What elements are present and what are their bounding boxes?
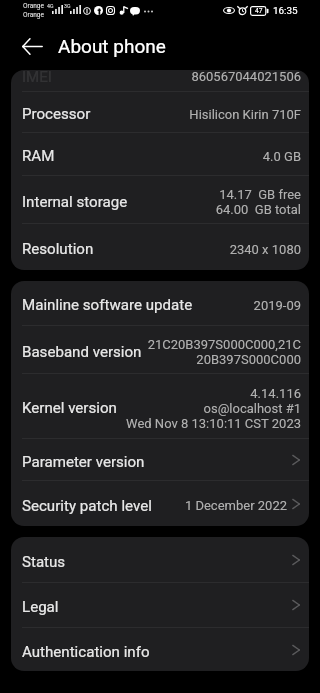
button[interactable]: Kernel version: [11, 374, 309, 438]
staticText: Baseband version: [22, 343, 142, 361]
staticText: 16:35: [273, 5, 298, 17]
button[interactable]: RAM: [11, 133, 309, 175]
button[interactable]: Baseband version: [11, 326, 309, 373]
staticText: 4G: [47, 3, 54, 9]
staticText: Wed Nov 8 13:10:11 CST 2023: [126, 416, 301, 431]
staticText: 47: [255, 7, 263, 15]
staticText: Status: [22, 553, 66, 571]
staticText: About phone: [58, 35, 166, 57]
button[interactable]: Mainline software update: [11, 281, 309, 325]
staticText: 3G: [64, 3, 71, 9]
staticText: 20B397S000C000: [196, 352, 301, 367]
staticText: 860567044021506: [191, 70, 301, 84]
button[interactable]: Security patch level: [11, 481, 309, 526]
staticText: 14.17 GB free: [219, 187, 301, 202]
staticText: Resolution: [22, 240, 94, 258]
button[interactable]: Status: [11, 537, 309, 582]
button[interactable]: Internal storage: [11, 176, 309, 223]
staticText: Orange: [23, 11, 45, 19]
staticText: 21C20B397S000C000,21C: [147, 337, 301, 352]
staticText: 2019-09: [253, 298, 301, 313]
staticText: RAM: [22, 147, 55, 165]
staticText: Legal: [22, 598, 59, 616]
button[interactable]: Processor: [11, 92, 309, 132]
staticText: os@localhost #1: [203, 401, 301, 416]
staticText: 1 December 2022: [184, 498, 287, 513]
staticText: 4.0 GB: [262, 149, 301, 164]
staticText: 64.00 GB total: [215, 202, 301, 217]
staticText: Mainline software update: [22, 296, 193, 314]
staticText: Kernel version: [22, 399, 117, 417]
staticText: IMEI: [22, 70, 52, 86]
staticText: Processor: [22, 105, 91, 123]
staticText: Parameter version: [22, 453, 145, 471]
button[interactable]: Legal: [11, 583, 309, 627]
button[interactable]: Back: [14, 28, 50, 64]
button[interactable]: Parameter version: [11, 439, 309, 480]
staticText: Hisilicon Kirin 710F: [189, 107, 301, 122]
button[interactable]: Authentication info: [11, 628, 309, 671]
staticText: Authentication info: [22, 643, 150, 661]
staticText: Orange: [23, 2, 45, 10]
staticText: Internal storage: [22, 193, 128, 211]
button[interactable]: Resolution: [11, 224, 309, 270]
button[interactable]: IMEI: [11, 70, 309, 91]
staticText: Security patch level: [22, 497, 152, 515]
staticText: 2340 x 1080: [229, 242, 301, 257]
staticText: 4.14.116: [250, 386, 301, 401]
